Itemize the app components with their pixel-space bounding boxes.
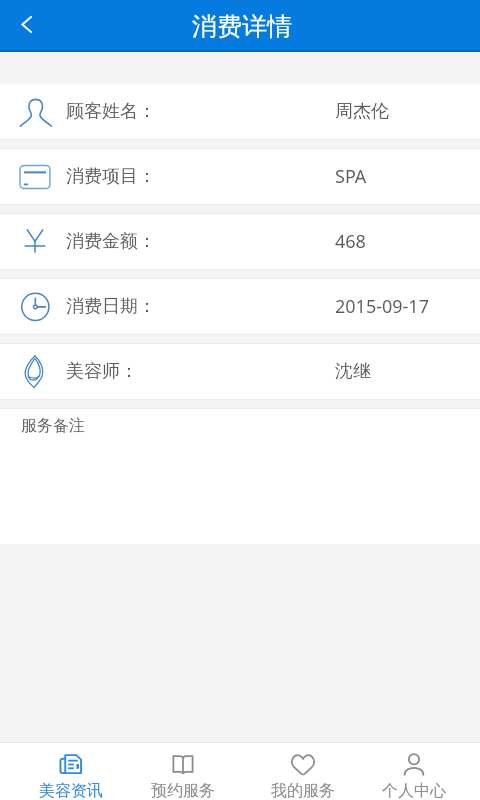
button[interactable]: 消费日期： (0, 279, 480, 334)
staticText: 周杰伦 (335, 100, 389, 123)
staticText: 2015-09-17 (335, 294, 429, 319)
staticText: 消费日期： (66, 295, 156, 318)
button[interactable]: 美容资讯 (14, 743, 127, 800)
staticText: SPA (335, 164, 367, 189)
staticText: 消费金额： (66, 230, 156, 253)
button[interactable]: Back (0, 2, 48, 50)
staticText: 沈继 (335, 360, 371, 383)
staticText: 服务备注 (21, 416, 85, 436)
staticText: 顾客姓名： (66, 100, 156, 123)
button[interactable]: 个人中心 (367, 743, 461, 800)
staticText: 美容师： (66, 360, 138, 383)
button[interactable]: 消费项目： (0, 149, 480, 204)
staticText: 个人中心 (382, 781, 446, 800)
staticText: 预约服务 (151, 781, 215, 800)
button[interactable]: 预约服务 (127, 743, 238, 800)
staticText: 我的服务 (271, 781, 335, 800)
button[interactable]: 美容师： (0, 344, 480, 399)
staticText: 消费项目： (66, 165, 156, 188)
staticText: 消费详情 (192, 11, 292, 42)
button[interactable]: 我的服务 (238, 743, 367, 800)
staticText: 468 (335, 229, 366, 254)
staticText: 美容资讯 (39, 781, 103, 800)
button[interactable]: 消费金额： (0, 214, 480, 269)
button[interactable]: 顾客姓名： (0, 84, 480, 139)
